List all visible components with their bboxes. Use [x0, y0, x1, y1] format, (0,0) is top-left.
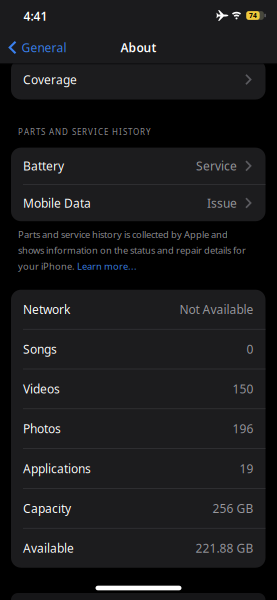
staticText: About: [120, 39, 156, 55]
button[interactable]: Coverage: [11, 59, 265, 99]
staticText: General: [21, 39, 66, 55]
staticText: 256 GB: [212, 500, 253, 516]
button[interactable]: Battery: [11, 148, 265, 184]
staticText: Mobile Data: [23, 195, 91, 211]
staticText: Coverage: [23, 71, 77, 87]
staticText: Parts and service history is collected b…: [18, 228, 228, 241]
staticText: 19: [239, 460, 253, 476]
staticText: your iPhone.: [18, 260, 77, 272]
staticText: 196: [232, 421, 253, 437]
staticText: 74: [249, 11, 257, 20]
staticText: 4:41: [23, 8, 47, 24]
staticText: P A R T S A N D S E R V I C E H I S T O …: [18, 126, 151, 137]
staticText: Service: [196, 158, 237, 174]
staticText: 221.88 GB: [195, 540, 253, 556]
staticText: shows information on the status and repa…: [18, 244, 246, 256]
staticText: 150: [232, 381, 253, 397]
button[interactable]: Mobile Data: [11, 185, 265, 221]
staticText: Photos: [23, 421, 61, 437]
staticText: Capacity: [23, 500, 71, 516]
staticText: 0: [246, 341, 253, 357]
button[interactable]: Back: [8, 39, 66, 55]
staticText: Battery: [23, 158, 64, 174]
staticText: Issue: [207, 195, 237, 211]
staticText: Available: [23, 540, 74, 556]
button[interactable]: Learn more...: [77, 260, 137, 272]
staticText: Not Available: [179, 301, 253, 317]
staticText: Videos: [23, 381, 60, 397]
staticText: Applications: [23, 460, 91, 476]
staticText: Learn more...: [77, 260, 137, 272]
staticText: Songs: [23, 341, 57, 357]
staticText: Network: [23, 301, 70, 317]
